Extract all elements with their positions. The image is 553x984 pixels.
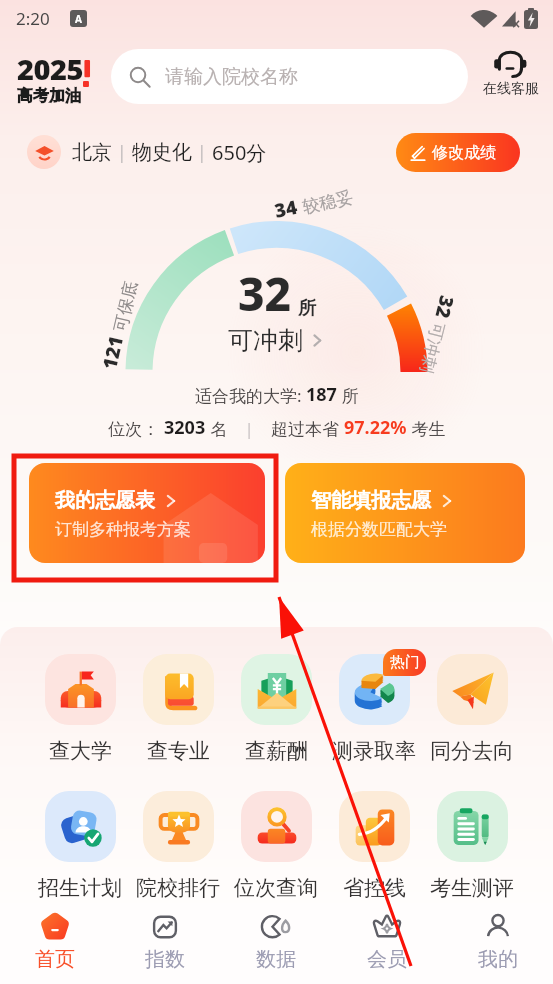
staticText: 34 bbox=[272, 194, 300, 224]
button[interactable]: 指数 bbox=[110, 903, 220, 984]
staticText: | bbox=[192, 140, 212, 165]
staticText: 可冲刺 bbox=[228, 325, 303, 356]
staticText: 可保底 bbox=[110, 279, 142, 334]
button[interactable]: 招生计划 bbox=[31, 791, 129, 901]
staticText: 考生测评 bbox=[430, 875, 514, 901]
staticText: 650分 bbox=[212, 139, 267, 166]
staticText: 请输入院校名称 bbox=[165, 65, 298, 89]
button[interactable]: 首页 bbox=[0, 903, 110, 984]
staticText: 考生 bbox=[407, 417, 446, 440]
staticText: 32 bbox=[429, 293, 460, 322]
staticText: 根据分数匹配大学 bbox=[311, 519, 447, 540]
staticText: 位次： bbox=[108, 417, 164, 440]
staticText: 我的 bbox=[478, 947, 518, 972]
staticText: 121 bbox=[96, 333, 129, 372]
button[interactable]: 会员 bbox=[331, 903, 442, 984]
staticText: 北京 bbox=[72, 140, 112, 165]
staticText: 可冲刺 bbox=[416, 320, 448, 375]
staticText: 3203 bbox=[164, 415, 206, 440]
button[interactable]: 查薪酬 bbox=[227, 654, 325, 764]
button[interactable]: 考生测评 bbox=[423, 791, 521, 901]
staticText: 订制多种报考方案 bbox=[55, 519, 191, 540]
staticText: 名 bbox=[206, 417, 228, 440]
button[interactable]: 我的 bbox=[442, 903, 553, 984]
staticText: 所 bbox=[298, 297, 316, 320]
staticText: 省控线 bbox=[343, 875, 406, 901]
staticText: 位次查询 bbox=[234, 875, 318, 901]
staticText: 指数 bbox=[145, 947, 185, 972]
staticText: 超过本省 bbox=[271, 417, 344, 440]
staticText: 我的志愿表 bbox=[55, 488, 155, 513]
staticText: 2025 bbox=[17, 49, 83, 88]
staticText: 修改成绩 bbox=[432, 143, 496, 163]
button[interactable]: 数据 bbox=[220, 903, 331, 984]
staticText: 首页 bbox=[35, 947, 75, 972]
staticText: 同分去向 bbox=[430, 738, 514, 764]
staticText: 热门 bbox=[390, 653, 420, 672]
button[interactable]: 智能填报志愿 bbox=[285, 463, 525, 563]
button[interactable]: 院校排行 bbox=[129, 791, 227, 901]
button[interactable]: 请输入院校名称 bbox=[111, 49, 468, 104]
staticText: 97.22% bbox=[344, 415, 407, 440]
button[interactable]: 修改成绩 bbox=[396, 133, 520, 172]
staticText: 物史化 bbox=[132, 140, 192, 165]
button[interactable]: 同分去向 bbox=[423, 654, 521, 764]
staticText: 院校排行 bbox=[136, 875, 220, 901]
staticText: 智能填报志愿 bbox=[311, 488, 431, 513]
staticText: A bbox=[75, 12, 82, 26]
button[interactable]: 我的志愿表 bbox=[29, 463, 265, 563]
button[interactable]: 位次查询 bbox=[227, 791, 325, 901]
staticText: 测录取率 bbox=[332, 738, 416, 764]
staticText: 数据 bbox=[256, 947, 296, 972]
staticText: 2:20 bbox=[16, 7, 50, 30]
staticText: 招生计划 bbox=[38, 875, 122, 901]
button[interactable]: 查大学 bbox=[31, 654, 129, 764]
staticText: 查专业 bbox=[147, 738, 210, 764]
staticText: 在线客服 bbox=[483, 80, 539, 98]
staticText: 较稳妥 bbox=[301, 187, 355, 218]
staticText: | bbox=[112, 140, 132, 165]
staticText: 会员 bbox=[367, 947, 407, 972]
button[interactable]: 省控线 bbox=[325, 791, 423, 901]
staticText: 查大学 bbox=[49, 738, 112, 764]
button[interactable]: 查专业 bbox=[129, 654, 227, 764]
staticText: 32 bbox=[238, 262, 292, 325]
staticText: 187 bbox=[306, 382, 337, 407]
staticText: 查薪酬 bbox=[245, 738, 308, 764]
staticText: 所 bbox=[337, 384, 359, 407]
staticText: 适合我的大学: bbox=[195, 384, 306, 407]
button[interactable]: 在线客服 bbox=[468, 48, 553, 98]
staticText: | bbox=[228, 418, 271, 440]
staticText: 高考加油 bbox=[17, 86, 81, 106]
button[interactable]: 热门 bbox=[325, 654, 423, 764]
